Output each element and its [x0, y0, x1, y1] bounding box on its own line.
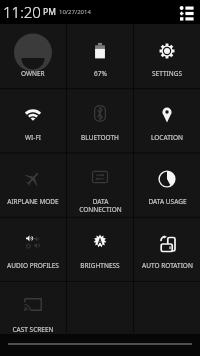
staticText: BLUETOOTH: [81, 133, 119, 142]
button[interactable]: OWNER: [0, 24, 66, 88]
button[interactable]: LOCATION: [134, 88, 200, 152]
button[interactable]: DATA CONNECTION: [67, 152, 133, 216]
button[interactable]: AUDIO PROFILES: [0, 216, 66, 280]
button[interactable]: 67%: [67, 24, 133, 88]
staticText: BRIGHTNESS: [80, 261, 120, 270]
button[interactable]: AIRPLANE MODE: [0, 152, 66, 216]
staticText: PM: [43, 6, 56, 18]
staticText: WI-FI: [25, 133, 41, 142]
staticText: OWNER: [21, 69, 45, 78]
button[interactable]: BRIGHTNESS: [67, 216, 133, 280]
button[interactable]: CAST SCREEN: [0, 280, 66, 344]
staticText: AUTO ROTATION: [142, 261, 193, 270]
staticText: AIRPLANE MODE: [7, 197, 59, 206]
staticText: 10/27/2014: [59, 8, 91, 16]
staticText: 11:20: [3, 2, 41, 22]
button[interactable]: AUTO ROTATION: [134, 216, 200, 280]
button[interactable]: DATA USAGE: [134, 152, 200, 216]
button[interactable]: BLUETOOTH: [67, 88, 133, 152]
staticText: CAST SCREEN: [12, 325, 54, 334]
staticText: DATA USAGE: [148, 197, 187, 206]
staticText: 67%: [94, 69, 107, 78]
staticText: DATA CONNECTION: [79, 197, 122, 214]
button[interactable]: SETTINGS: [134, 24, 200, 88]
button[interactable]: WI-FI: [0, 88, 66, 152]
staticText: AUDIO PROFILES: [7, 261, 59, 270]
staticText: LOCATION: [151, 133, 183, 142]
button[interactable]: Quick settings list: [177, 3, 195, 21]
staticText: SETTINGS: [152, 69, 182, 78]
